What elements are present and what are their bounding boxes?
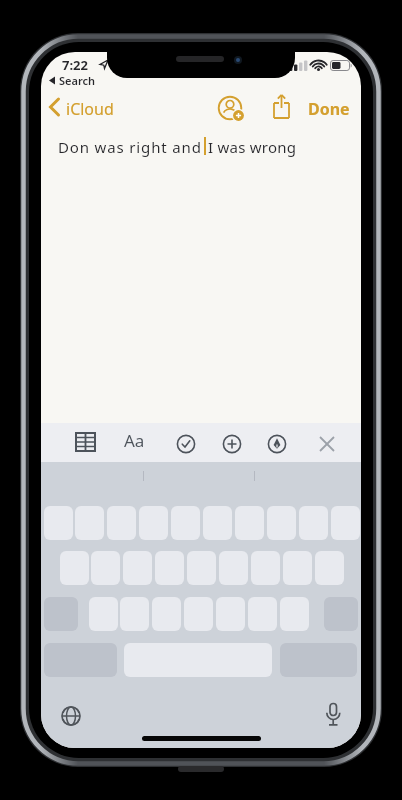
button[interactable]: iCloud: [45, 95, 125, 123]
button[interactable]: [60, 705, 82, 727]
button[interactable]: [171, 506, 200, 540]
button[interactable]: [248, 597, 277, 631]
button[interactable]: [267, 434, 287, 454]
button[interactable]: [315, 551, 344, 585]
button[interactable]: [123, 551, 152, 585]
button[interactable]: [89, 597, 118, 631]
button[interactable]: [267, 506, 296, 540]
button[interactable]: [75, 432, 97, 453]
button[interactable]: [323, 702, 343, 729]
staticText: I was wrong: [208, 137, 297, 157]
button[interactable]: [60, 551, 89, 585]
button[interactable]: [317, 434, 337, 454]
button[interactable]: [44, 506, 73, 540]
button[interactable]: [120, 597, 149, 631]
button[interactable]: [280, 597, 309, 631]
button[interactable]: [222, 434, 242, 454]
staticText: 7:22: [62, 56, 88, 74]
staticText: iCloud: [66, 98, 114, 120]
button[interactable]: [91, 551, 120, 585]
button[interactable]: [251, 551, 280, 585]
button[interactable]: [107, 506, 136, 540]
button[interactable]: [283, 551, 312, 585]
button[interactable]: Done: [308, 98, 350, 120]
staticText: Don was right and: [58, 137, 202, 157]
button[interactable]: [155, 551, 184, 585]
button[interactable]: [152, 597, 181, 631]
button[interactable]: [139, 506, 168, 540]
button[interactable]: [217, 95, 245, 123]
button[interactable]: [331, 506, 360, 540]
button[interactable]: [176, 434, 196, 454]
button[interactable]: [235, 506, 264, 540]
button[interactable]: [299, 506, 328, 540]
button[interactable]: [184, 597, 213, 631]
button[interactable]: [203, 506, 232, 540]
button[interactable]: [187, 551, 216, 585]
button[interactable]: [219, 551, 248, 585]
button[interactable]: [271, 93, 295, 123]
staticText: Aa: [124, 429, 145, 452]
button[interactable]: [75, 506, 104, 540]
button[interactable]: [216, 597, 245, 631]
staticText: Search: [59, 73, 96, 88]
button[interactable]: Aa: [124, 428, 150, 456]
